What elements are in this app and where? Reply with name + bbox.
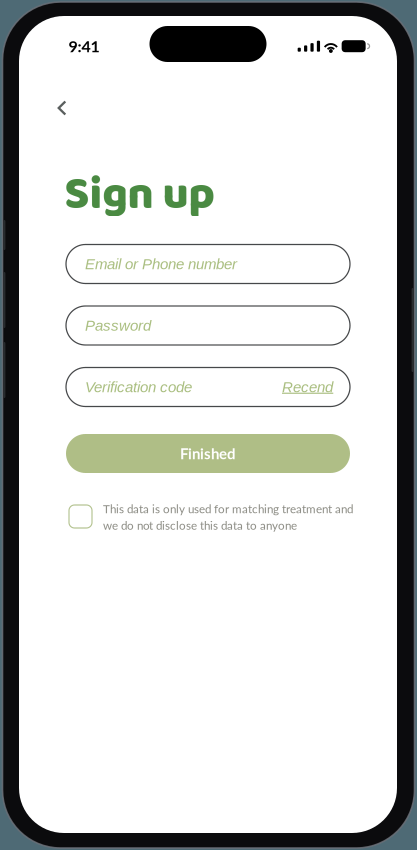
- staticText: Recend: [282, 379, 333, 395]
- button[interactable]: Agree to data terms: [69, 505, 92, 528]
- button[interactable]: Back: [45, 91, 79, 125]
- staticText: Verification code: [85, 379, 192, 395]
- staticText: Password: [85, 317, 151, 334]
- staticText: 9:41: [68, 36, 99, 56]
- staticText: Email or Phone number: [85, 256, 237, 272]
- button[interactable]: Recend: [282, 379, 333, 395]
- staticText: Finished: [180, 444, 236, 462]
- staticText: Sign up: [64, 159, 214, 231]
- staticText: This data is only used for matching trea…: [103, 502, 353, 532]
- button[interactable]: Finished: [66, 434, 350, 473]
